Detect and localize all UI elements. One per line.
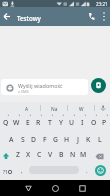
button[interactable]: R	[33, 114, 44, 131]
staticText: J	[77, 135, 79, 144]
button[interactable]: O	[88, 114, 99, 131]
staticText: N	[70, 150, 76, 159]
button[interactable]: D	[28, 131, 39, 147]
staticText: Na	[51, 106, 58, 113]
button[interactable]	[80, 7, 110, 26]
button[interactable]: C	[34, 147, 45, 163]
staticText: E	[26, 118, 30, 127]
staticText: K	[86, 135, 91, 144]
button[interactable]: Q	[0, 114, 11, 131]
staticText: W	[13, 118, 20, 127]
staticText: A	[9, 135, 14, 144]
staticText: R	[36, 118, 41, 127]
button[interactable]: X	[23, 147, 34, 163]
button[interactable]: A	[0, 102, 40, 114]
staticText: T	[48, 118, 52, 127]
staticText: G	[53, 135, 58, 144]
staticText: Testowy	[17, 14, 41, 22]
button[interactable]: J	[72, 131, 83, 147]
staticText: ,	[21, 167, 23, 175]
staticText: M	[80, 150, 87, 159]
staticText: O	[91, 118, 97, 127]
button[interactable]: H	[61, 131, 72, 147]
staticText: C	[37, 150, 42, 159]
button[interactable]	[42, 180, 69, 196]
button[interactable]	[15, 180, 42, 196]
staticText: U	[69, 118, 75, 127]
button[interactable]: F	[39, 131, 50, 147]
staticText: P	[102, 118, 107, 127]
button[interactable]: G	[50, 131, 61, 147]
button[interactable]: ,	[17, 163, 27, 180]
button[interactable]: N	[67, 147, 78, 163]
button[interactable]: Na	[41, 102, 67, 114]
button[interactable]: Z	[12, 147, 23, 163]
staticText: Y	[59, 118, 63, 127]
button[interactable]	[69, 180, 96, 196]
staticText: H	[64, 135, 70, 144]
button[interactable]: L	[94, 131, 105, 147]
staticText: ?1	[3, 169, 8, 175]
button[interactable]	[89, 147, 110, 163]
button[interactable]	[95, 102, 110, 114]
button[interactable]: W	[68, 102, 94, 114]
staticText: V	[48, 150, 53, 159]
button[interactable]	[0, 147, 12, 163]
button[interactable]: A	[5, 131, 17, 147]
button[interactable]: .	[82, 163, 91, 180]
staticText: S	[21, 135, 25, 144]
staticText: W	[79, 106, 84, 113]
button[interactable]	[0, 7, 14, 26]
button[interactable]: W	[11, 114, 22, 131]
staticText: X	[26, 150, 31, 159]
button[interactable]: ?1	[0, 163, 15, 180]
staticText: 23:21	[96, 1, 108, 7]
button[interactable]: B	[56, 147, 67, 163]
staticText: L	[98, 135, 102, 144]
button[interactable]: K	[83, 131, 94, 147]
button[interactable]: Wyślij wiadomość	[1, 79, 88, 95]
staticText: D	[31, 135, 36, 144]
button[interactable]: S	[17, 131, 28, 147]
button[interactable]: E	[22, 114, 33, 131]
staticText: A	[25, 106, 29, 113]
button[interactable]	[95, 165, 106, 176]
button[interactable]: Y	[55, 114, 66, 131]
staticText: .	[86, 167, 88, 175]
staticText: B	[59, 150, 64, 159]
staticText: Q	[3, 118, 9, 127]
staticText: I	[81, 118, 84, 127]
staticText: Wyślij wiadomość	[18, 82, 63, 89]
staticText: Z	[16, 150, 20, 159]
button[interactable]: I	[77, 114, 88, 131]
button[interactable]: M	[78, 147, 89, 163]
button[interactable]: V	[45, 147, 56, 163]
button[interactable]: T	[44, 114, 55, 131]
button[interactable]: P	[99, 114, 110, 131]
staticText: z SMS	[18, 89, 29, 94]
button[interactable]	[91, 78, 106, 93]
staticText: F	[43, 135, 47, 144]
button[interactable]: U	[66, 114, 77, 131]
